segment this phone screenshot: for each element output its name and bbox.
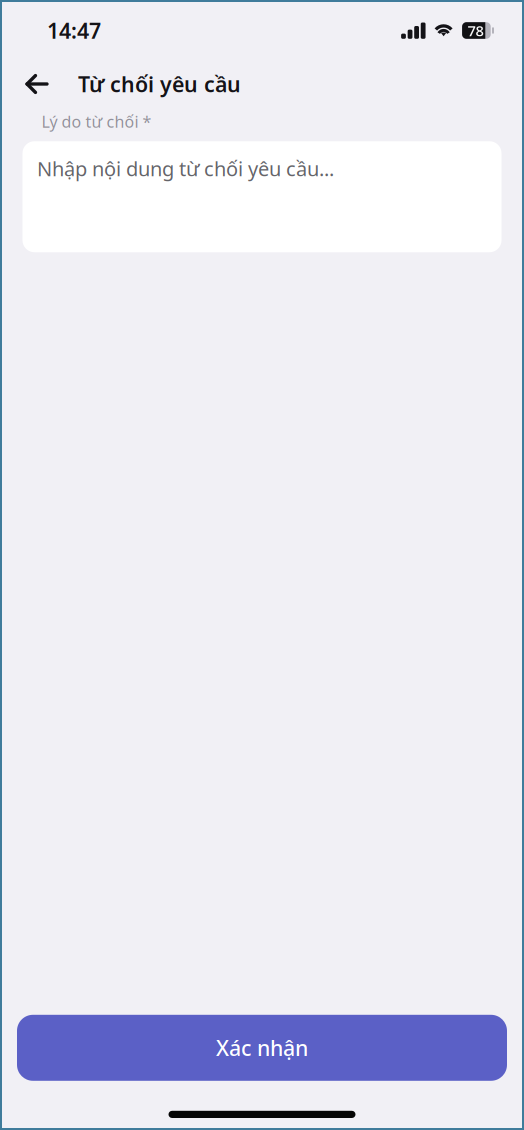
staticText: 14:47 — [47, 16, 101, 45]
button[interactable]: Nhập nội dung từ chối yêu cầu... — [22, 141, 501, 252]
staticText: Nhập nội dung từ chối yêu cầu... — [37, 155, 334, 182]
staticText: Lý do từ chối * — [41, 111, 151, 132]
button[interactable]: Xác nhận — [17, 1015, 507, 1081]
staticText: Từ chối yêu cầu — [78, 70, 241, 98]
staticText: Xác nhận — [216, 1034, 308, 1062]
button[interactable]: Back — [13, 61, 61, 107]
staticText: 78 — [467, 21, 483, 40]
